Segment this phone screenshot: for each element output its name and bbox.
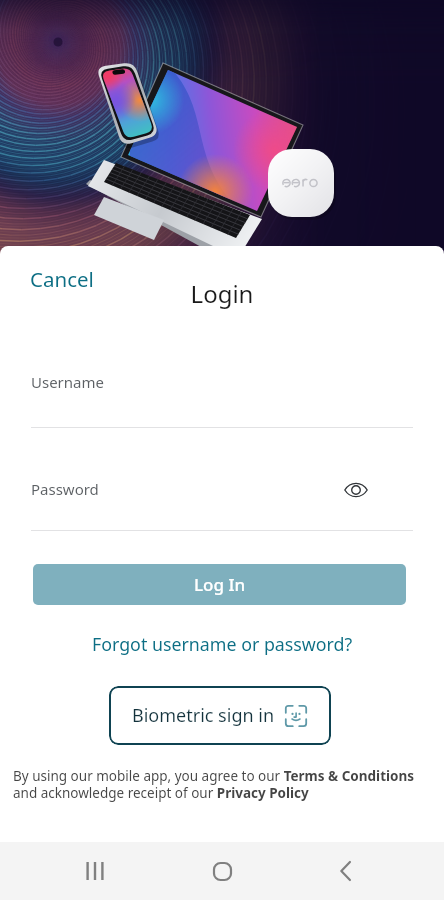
button[interactable]: Biometric sign in bbox=[109, 686, 331, 745]
staticText: By using our mobile app, you agree to ou… bbox=[13, 767, 415, 802]
staticText: Forgot username or password? bbox=[92, 632, 353, 656]
button[interactable]: Show password bbox=[340, 474, 372, 506]
staticText: Log In bbox=[194, 573, 246, 596]
button[interactable]: Forgot username or password? bbox=[84, 627, 361, 661]
button[interactable]: Home bbox=[201, 850, 243, 892]
staticText: Cancel bbox=[30, 265, 94, 293]
button[interactable]: Cancel bbox=[18, 259, 106, 299]
staticText: Username bbox=[31, 372, 104, 392]
button[interactable]: Back bbox=[325, 850, 367, 892]
staticText: Biometric sign in bbox=[132, 703, 275, 728]
button[interactable]: Log In bbox=[33, 564, 406, 605]
staticText: Login bbox=[0, 277, 444, 310]
staticText: Password bbox=[31, 479, 99, 499]
button[interactable]: Recent apps bbox=[74, 850, 116, 892]
